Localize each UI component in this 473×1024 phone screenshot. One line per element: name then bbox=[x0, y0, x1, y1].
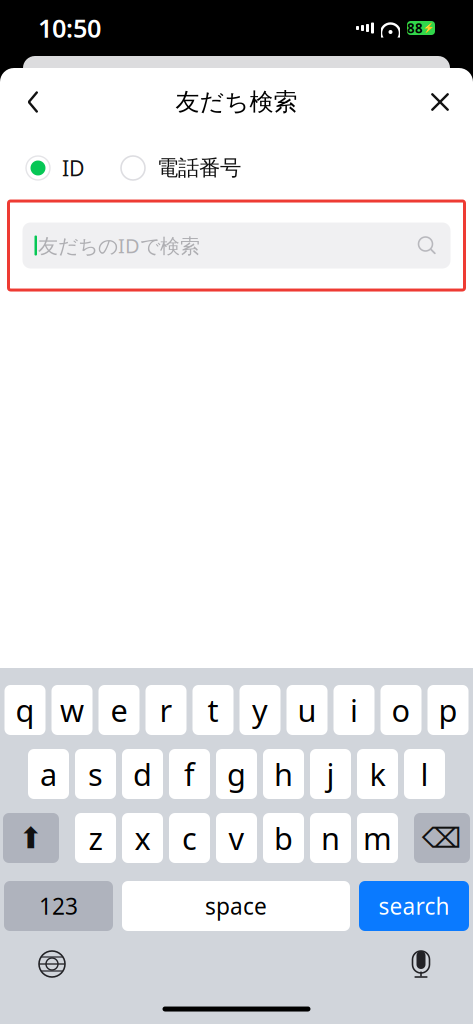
button[interactable]: k bbox=[357, 749, 398, 799]
staticText: k bbox=[369, 754, 385, 794]
button[interactable]: z bbox=[75, 813, 116, 863]
button[interactable]: ID bbox=[26, 154, 85, 182]
staticText: x bbox=[134, 818, 150, 858]
button[interactable]: space bbox=[122, 881, 350, 931]
button[interactable]: b bbox=[263, 813, 304, 863]
button[interactable]: e bbox=[98, 685, 139, 735]
button[interactable]: s bbox=[75, 749, 116, 799]
staticText: 123 bbox=[39, 891, 78, 921]
button[interactable]: q bbox=[4, 685, 45, 735]
button[interactable]: 次のキーボード bbox=[24, 940, 80, 988]
button[interactable]: l bbox=[404, 749, 445, 799]
button[interactable]: f bbox=[169, 749, 210, 799]
button[interactable]: r bbox=[145, 685, 186, 735]
staticText: z bbox=[88, 818, 102, 858]
button[interactable]: o bbox=[380, 685, 421, 735]
staticText: ⚡ bbox=[423, 23, 435, 33]
button[interactable]: search bbox=[359, 881, 469, 931]
button[interactable]: h bbox=[263, 749, 304, 799]
staticText: c bbox=[182, 818, 197, 858]
staticText: m bbox=[363, 818, 392, 858]
button[interactable]: 音声入力 bbox=[393, 940, 449, 988]
staticText: l bbox=[420, 754, 428, 794]
staticText: search bbox=[378, 891, 449, 921]
button[interactable]: t bbox=[192, 685, 233, 735]
staticText: y bbox=[252, 690, 268, 730]
button[interactable]: j bbox=[310, 749, 351, 799]
button[interactable]: 友だちのIDで検索 bbox=[22, 222, 450, 268]
button[interactable]: a bbox=[28, 749, 69, 799]
button[interactable]: w bbox=[51, 685, 92, 735]
staticText: 友だちのIDで検索 bbox=[38, 232, 200, 259]
button[interactable]: y bbox=[239, 685, 280, 735]
button[interactable]: x bbox=[122, 813, 163, 863]
staticText: v bbox=[228, 818, 244, 858]
staticText: i bbox=[350, 690, 358, 730]
staticText: p bbox=[438, 690, 457, 730]
staticText: space bbox=[205, 891, 267, 921]
staticText: ID bbox=[62, 154, 85, 182]
staticText: w bbox=[60, 690, 84, 730]
staticText: g bbox=[227, 754, 246, 794]
staticText: t bbox=[207, 690, 218, 730]
staticText: f bbox=[184, 754, 195, 794]
button[interactable]: g bbox=[216, 749, 257, 799]
staticText: j bbox=[326, 754, 334, 794]
staticText: h bbox=[274, 754, 293, 794]
button[interactable]: n bbox=[310, 813, 351, 863]
staticText: ⌫ bbox=[422, 822, 462, 854]
staticText: n bbox=[321, 818, 340, 858]
button[interactable]: v bbox=[216, 813, 257, 863]
button[interactable]: u bbox=[286, 685, 327, 735]
button[interactable]: d bbox=[122, 749, 163, 799]
button[interactable]: 電話番号 bbox=[121, 155, 241, 181]
staticText: 友だち検索 bbox=[175, 87, 297, 117]
staticText: o bbox=[391, 690, 410, 730]
staticText: s bbox=[88, 754, 103, 794]
button[interactable]: m bbox=[357, 813, 398, 863]
staticText: b bbox=[274, 818, 293, 858]
button[interactable]: i bbox=[333, 685, 374, 735]
staticText: 88 bbox=[407, 19, 423, 37]
button[interactable]: p bbox=[427, 685, 468, 735]
staticText: ⬆ bbox=[18, 821, 43, 855]
button[interactable]: 戻る bbox=[6, 76, 60, 128]
button[interactable]: 123 bbox=[4, 881, 113, 931]
staticText: a bbox=[40, 754, 57, 794]
button[interactable]: Delete bbox=[414, 813, 470, 863]
staticText: r bbox=[159, 690, 172, 730]
button[interactable]: Shift bbox=[3, 813, 59, 863]
staticText: d bbox=[133, 754, 152, 794]
button[interactable]: c bbox=[169, 813, 210, 863]
staticText: 電話番号 bbox=[157, 155, 241, 181]
staticText: e bbox=[110, 690, 127, 730]
staticText: u bbox=[297, 690, 316, 730]
button[interactable]: 閉じる bbox=[413, 76, 467, 128]
staticText: q bbox=[15, 690, 34, 730]
staticText: 10:50 bbox=[38, 11, 101, 45]
